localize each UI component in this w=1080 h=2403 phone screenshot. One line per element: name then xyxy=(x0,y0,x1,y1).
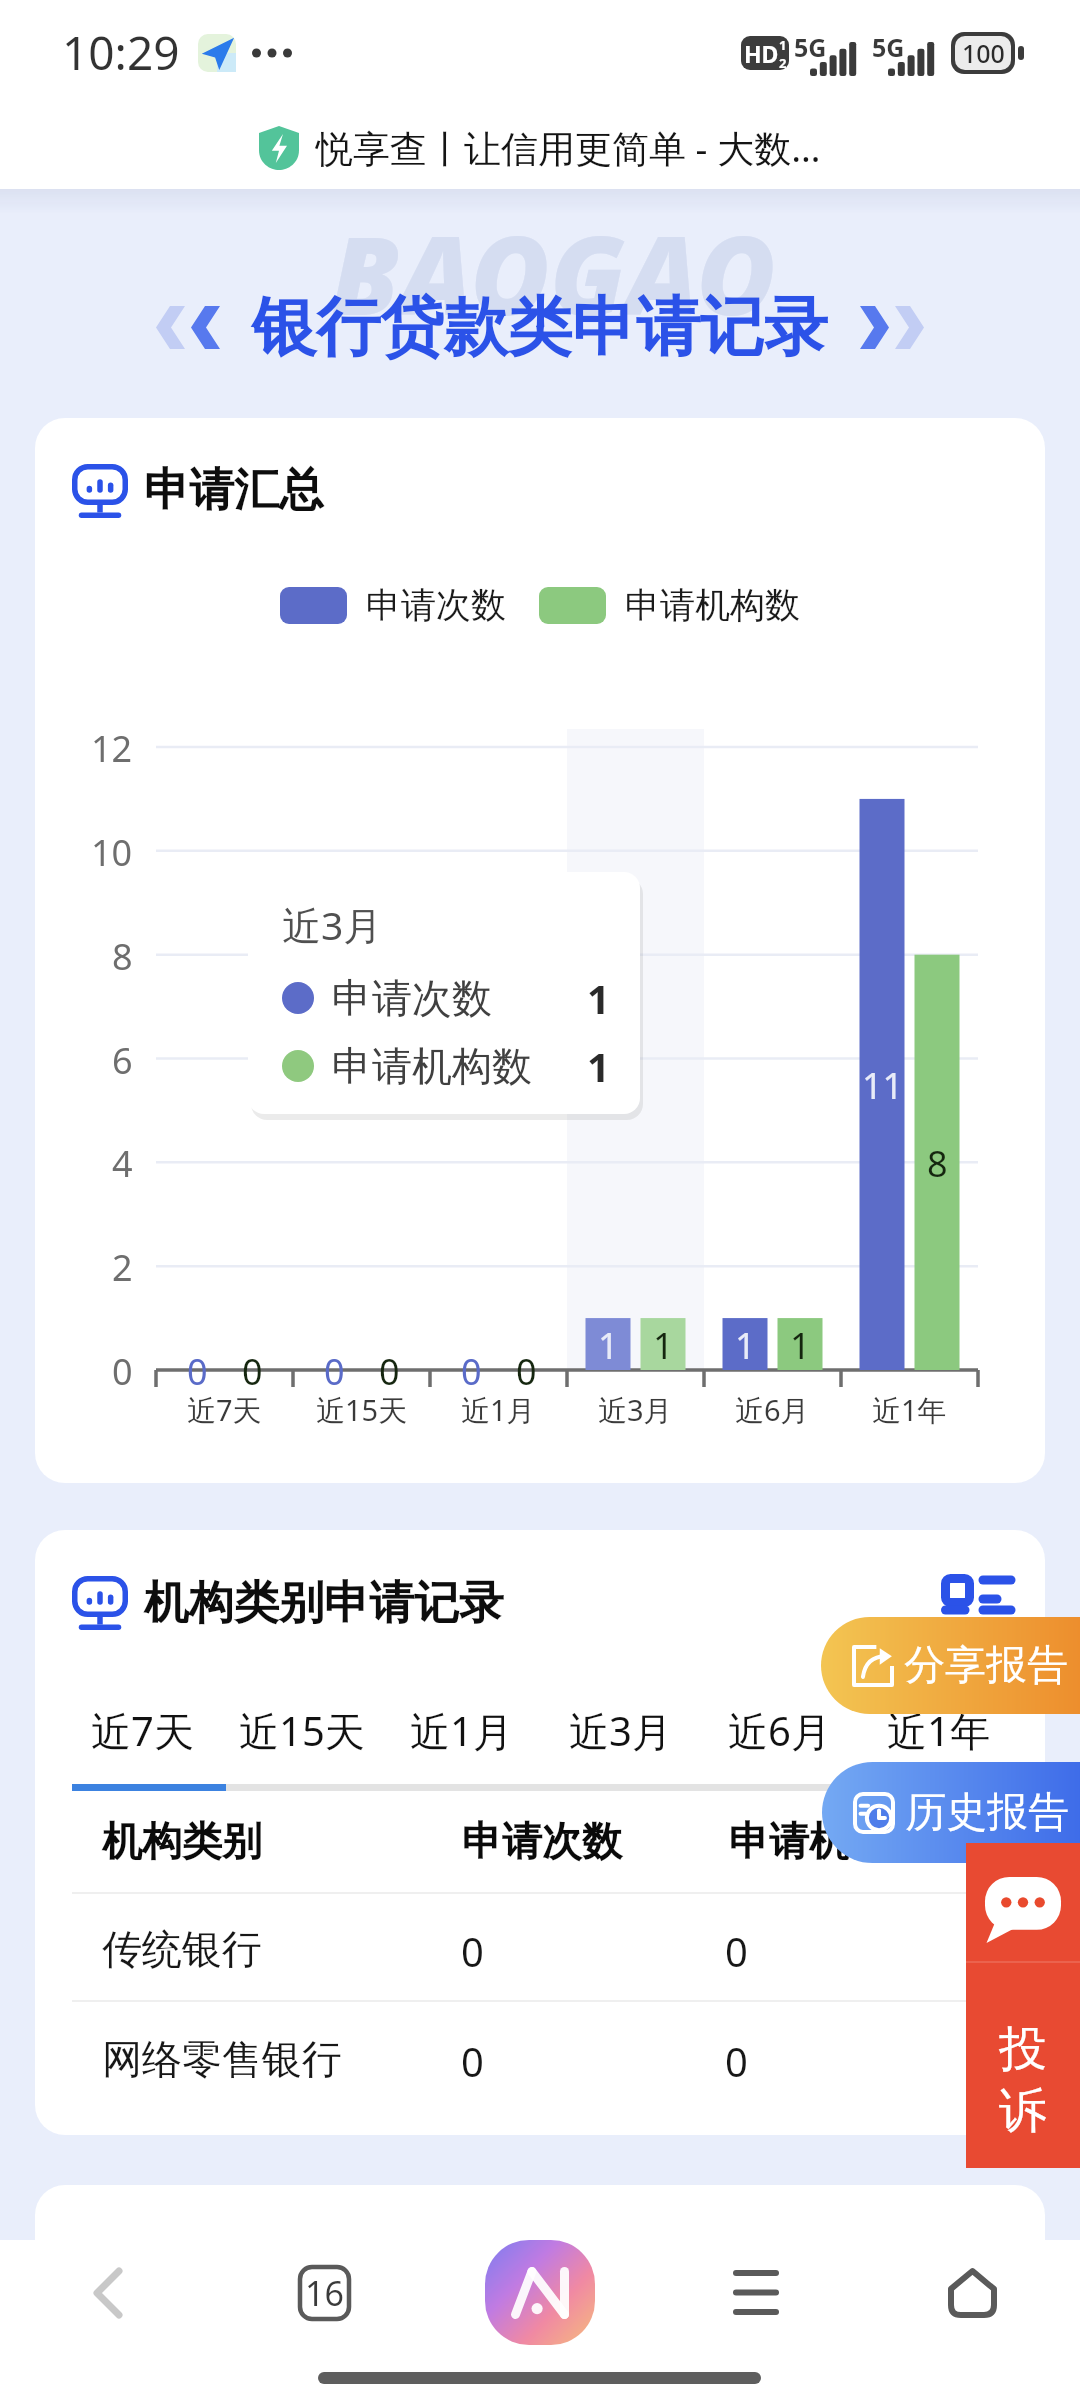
staticText: 1 xyxy=(587,1039,610,1093)
staticText: 机构类别 xyxy=(102,1816,262,1866)
staticText: 近6月 xyxy=(735,1390,810,1430)
staticText: 近15天 xyxy=(239,1703,365,1758)
staticText: 申请机构数 xyxy=(625,583,800,627)
staticText: 网络零售银行 xyxy=(102,2034,342,2084)
button[interactable]: 近1月 xyxy=(382,1702,541,1758)
staticText: 近6月 xyxy=(728,1703,831,1758)
button[interactable]: 分享报告 xyxy=(821,1617,1080,1714)
staticText: 近1年 xyxy=(887,1703,990,1758)
button[interactable]: 菜单 xyxy=(648,2240,864,2345)
staticText: 悦享查丨让信用更简单 - 大数… xyxy=(316,122,821,173)
staticText: 0 xyxy=(725,1924,748,1978)
button[interactable]: 近7天 xyxy=(62,1702,222,1758)
staticText: 近15天 xyxy=(316,1390,408,1430)
staticText: 分享报告 xyxy=(904,1640,1068,1692)
staticText: 传统银行 xyxy=(102,1924,262,1974)
staticText: 投 诉 xyxy=(999,2019,1047,2142)
staticText: 8 xyxy=(112,932,133,978)
staticText: 0 xyxy=(379,1347,400,1393)
staticText: 0 xyxy=(324,1347,345,1393)
staticText: 0 xyxy=(242,1347,263,1393)
staticText: 12 xyxy=(91,724,133,770)
staticText: 2 xyxy=(112,1243,133,1289)
staticText: 0 xyxy=(461,2034,484,2088)
button[interactable]: 近6月 xyxy=(700,1702,859,1758)
staticText: 1 xyxy=(790,1321,811,1367)
staticText: 近3月 xyxy=(282,898,383,951)
staticText: 机构类别申请记录 xyxy=(144,1575,504,1632)
staticText: 0 xyxy=(112,1347,133,1393)
staticText: 5G xyxy=(794,30,827,64)
staticText: 申请次数 xyxy=(332,973,492,1023)
staticText: 0 xyxy=(725,2034,748,2088)
staticText: 0 xyxy=(187,1347,208,1393)
staticText: 近7天 xyxy=(91,1703,194,1758)
button[interactable]: 返回 xyxy=(0,2240,216,2345)
staticText: 4 xyxy=(112,1139,133,1185)
staticText: 5G xyxy=(872,30,905,64)
button[interactable]: 近15天 xyxy=(222,1702,382,1758)
staticText: 1 xyxy=(779,36,787,54)
staticText: 银行贷款类申请记录 xyxy=(252,287,828,368)
staticText: 10 xyxy=(91,828,133,874)
staticText: BAOGAO xyxy=(331,200,776,347)
staticText: 近1年 xyxy=(872,1390,947,1430)
staticText: 8 xyxy=(927,1139,948,1185)
staticText: 1 xyxy=(735,1321,756,1367)
button[interactable]: 投诉 xyxy=(966,1843,1080,2168)
button[interactable]: 近3月 xyxy=(541,1702,700,1758)
button[interactable]: 标签页 16 xyxy=(216,2240,432,2345)
staticText: 16 xyxy=(305,2270,344,2316)
staticText: 100 xyxy=(962,36,1005,70)
button[interactable]: 悦享查首页 xyxy=(432,2240,648,2345)
staticText: 申请次数 xyxy=(366,583,506,627)
button[interactable]: 历史报告 xyxy=(822,1762,1080,1863)
staticText: 申请机构数 xyxy=(729,1816,929,1866)
staticText: 10:29 xyxy=(62,21,180,84)
staticText: 1 xyxy=(653,1321,674,1367)
staticText: HD xyxy=(744,38,779,69)
staticText: 2 xyxy=(779,54,787,70)
staticText: 近7天 xyxy=(187,1390,262,1430)
staticText: 6 xyxy=(112,1036,133,1082)
staticText: 近3月 xyxy=(569,1703,672,1758)
staticText: 申请机构数 xyxy=(332,1041,532,1091)
staticText: 近1月 xyxy=(410,1703,513,1758)
staticText: 近3月 xyxy=(598,1390,673,1430)
staticText: 申请次数 xyxy=(462,1816,622,1866)
staticText: 0 xyxy=(461,1924,484,1978)
button[interactable]: 切换视图 xyxy=(941,1574,1011,1632)
staticText: 1 xyxy=(598,1321,619,1367)
staticText: 历史报告 xyxy=(905,1787,1069,1839)
staticText: 1 xyxy=(587,971,610,1025)
staticText: 申请汇总 xyxy=(144,462,324,519)
staticText: 0 xyxy=(461,1347,482,1393)
staticText: 近1月 xyxy=(461,1390,536,1430)
staticText: 11 xyxy=(862,1061,904,1107)
staticText: 0 xyxy=(516,1347,537,1393)
button[interactable]: 首页 xyxy=(864,2240,1080,2345)
button[interactable]: 近1年 xyxy=(859,1702,1018,1758)
